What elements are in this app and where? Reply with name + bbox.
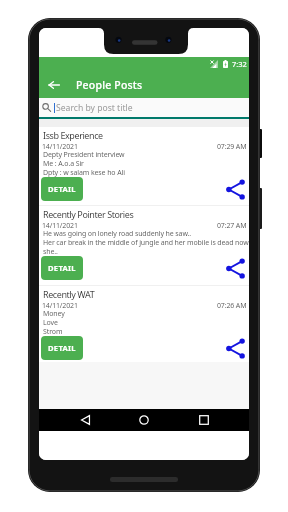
- staticText: 14/11/2021: [42, 221, 78, 231]
- staticText: she..: [43, 247, 58, 256]
- button[interactable]: Share: [224, 178, 246, 200]
- staticText: Me : A.o.a Sir: [43, 159, 84, 168]
- staticText: 14/11/2021: [42, 301, 78, 311]
- staticText: DETAIL: [48, 184, 76, 194]
- button[interactable]: Home: [134, 410, 154, 430]
- button[interactable]: Recent apps: [194, 410, 214, 430]
- button[interactable]: Search by post title: [39, 98, 249, 119]
- staticText: Money: [43, 309, 65, 318]
- button[interactable]: Recently WAT: [39, 286, 249, 362]
- staticText: 07:27 AM: [217, 221, 247, 231]
- staticText: Search by post title: [56, 102, 133, 114]
- staticText: Issb Experience: [43, 129, 103, 141]
- staticText: DETAIL: [48, 343, 76, 353]
- staticText: Love: [43, 318, 58, 327]
- staticText: People Posts: [76, 78, 143, 92]
- staticText: 14/11/2021: [42, 142, 78, 152]
- button[interactable]: Share: [224, 257, 246, 279]
- button[interactable]: DETAIL: [41, 256, 83, 280]
- button[interactable]: DETAIL: [41, 177, 83, 201]
- staticText: DETAIL: [48, 263, 76, 273]
- button[interactable]: Recently Pointer Stories: [39, 206, 249, 285]
- staticText: He was going on lonely road suddenly he …: [43, 229, 191, 238]
- staticText: Strom: [43, 327, 63, 336]
- button[interactable]: Back: [75, 410, 95, 430]
- staticText: Her car break in the middle of jungle an…: [43, 238, 249, 247]
- staticText: 07:26 AM: [217, 301, 247, 311]
- button[interactable]: Share: [224, 337, 246, 359]
- staticText: Recently Pointer Stories: [43, 208, 134, 220]
- staticText: Recently WAT: [43, 288, 95, 300]
- button[interactable]: Issb Experience: [39, 127, 249, 205]
- button[interactable]: DETAIL: [41, 336, 83, 360]
- button[interactable]: Back: [44, 75, 64, 95]
- staticText: 07:29 AM: [217, 142, 247, 152]
- staticText: 7:32: [232, 59, 247, 69]
- staticText: Dpty : w salam kese ho Ali: [43, 168, 125, 177]
- staticText: Depty President interview: [43, 150, 125, 159]
